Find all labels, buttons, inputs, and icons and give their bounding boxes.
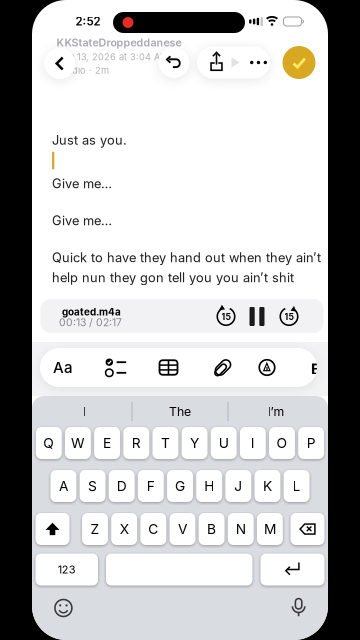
button[interactable]: Q xyxy=(36,427,62,459)
button[interactable]: P xyxy=(298,427,324,459)
button[interactable]: Delete xyxy=(290,513,324,545)
button[interactable]: W xyxy=(65,427,91,459)
button[interactable]: The xyxy=(133,396,227,426)
button[interactable]: Shift xyxy=(35,513,69,545)
staticText: Audio · 2m xyxy=(61,65,109,76)
staticText: S xyxy=(88,478,97,494)
button[interactable]: 123 xyxy=(35,553,98,585)
button[interactable]: H xyxy=(196,470,222,502)
staticText: I xyxy=(82,404,85,419)
button[interactable]: K xyxy=(254,470,280,502)
staticText: F xyxy=(147,478,155,494)
staticText: 15 xyxy=(284,312,293,322)
staticText: X xyxy=(120,521,129,537)
button[interactable]: Dictate xyxy=(284,593,314,623)
staticText: Z xyxy=(90,521,99,537)
staticText: P xyxy=(307,435,316,451)
staticText: U xyxy=(219,435,229,451)
button[interactable]: F xyxy=(138,470,164,502)
button[interactable]: Return xyxy=(260,553,324,585)
button[interactable]: Markup xyxy=(252,348,282,387)
button[interactable]: Back xyxy=(44,48,75,79)
button[interactable]: C xyxy=(140,513,166,545)
staticText: 00:13 / 02:17 xyxy=(59,316,122,329)
staticText: 15 xyxy=(221,312,230,322)
button[interactable]: U xyxy=(211,427,237,459)
staticText: Q xyxy=(43,435,54,451)
staticText: C xyxy=(148,521,158,537)
staticText: W xyxy=(71,435,85,451)
button[interactable]: B xyxy=(199,513,225,545)
staticText: L xyxy=(293,478,301,494)
staticText: Quick to have they hand out when they ai… xyxy=(52,250,321,265)
button[interactable]: Done xyxy=(282,46,315,79)
button[interactable]: More xyxy=(245,46,271,78)
staticText: Jan 13, 2026 at 3:04 AM xyxy=(59,51,168,62)
button[interactable]: Space xyxy=(106,553,252,585)
staticText: Aa xyxy=(53,358,73,377)
button[interactable]: A xyxy=(50,470,76,502)
button[interactable]: Share xyxy=(204,46,228,78)
staticText: G xyxy=(175,478,185,494)
button[interactable]: M xyxy=(257,513,283,545)
staticText: M xyxy=(264,521,276,537)
staticText: H xyxy=(204,478,214,494)
button[interactable]: S xyxy=(80,470,105,502)
staticText: K xyxy=(263,478,272,494)
button[interactable]: X xyxy=(111,513,137,545)
button[interactable]: Undo xyxy=(158,47,189,78)
button[interactable]: R xyxy=(123,427,149,459)
staticText: 123 xyxy=(58,563,76,576)
button[interactable]: Skip forward 15 seconds xyxy=(278,305,300,327)
button[interactable]: I xyxy=(37,396,131,426)
button[interactable]: Emoji xyxy=(48,593,78,623)
staticText: Y xyxy=(190,435,199,451)
button[interactable]: D xyxy=(109,470,135,502)
staticText: T xyxy=(161,435,170,451)
staticText: J xyxy=(234,478,242,494)
staticText: help nun they gon tell you you ain’t shi… xyxy=(52,270,294,285)
staticText: KKStateDroppeddanese xyxy=(56,36,181,49)
staticText: goated.m4a xyxy=(62,306,121,318)
button[interactable]: N xyxy=(228,513,254,545)
staticText: 2:52 xyxy=(75,15,100,28)
button[interactable]: T xyxy=(152,427,178,459)
button[interactable]: I xyxy=(240,427,266,459)
button[interactable]: J xyxy=(225,470,251,502)
staticText: Give me… xyxy=(52,176,112,191)
staticText: The xyxy=(169,404,191,419)
button[interactable]: Z xyxy=(82,513,108,545)
staticText: E xyxy=(103,435,111,451)
button[interactable]: Format xyxy=(45,348,81,387)
button[interactable]: L xyxy=(284,470,309,502)
button[interactable]: Pause xyxy=(247,305,267,327)
staticText: Give me… xyxy=(52,213,112,228)
button[interactable]: E xyxy=(94,427,120,459)
staticText: A xyxy=(59,478,68,494)
button[interactable]: Y xyxy=(182,427,207,459)
staticText: Just as you. xyxy=(52,132,127,148)
staticText: B xyxy=(311,360,321,378)
button[interactable]: I’m xyxy=(229,396,323,426)
staticText: B xyxy=(207,521,216,537)
button[interactable]: Attach xyxy=(208,348,238,387)
button[interactable]: Checklist xyxy=(101,348,131,387)
button[interactable]: G xyxy=(167,470,193,502)
button[interactable]: Skip back 15 seconds xyxy=(215,305,237,327)
button[interactable]: V xyxy=(169,513,195,545)
staticText: D xyxy=(117,478,127,494)
button[interactable]: Table xyxy=(153,348,183,387)
staticText: N xyxy=(236,521,246,537)
staticText: I’m xyxy=(267,404,284,419)
staticText: O xyxy=(276,435,287,451)
staticText: I xyxy=(251,435,255,451)
button[interactable]: O xyxy=(269,427,295,459)
staticText: R xyxy=(132,435,141,451)
staticText: V xyxy=(178,521,187,537)
